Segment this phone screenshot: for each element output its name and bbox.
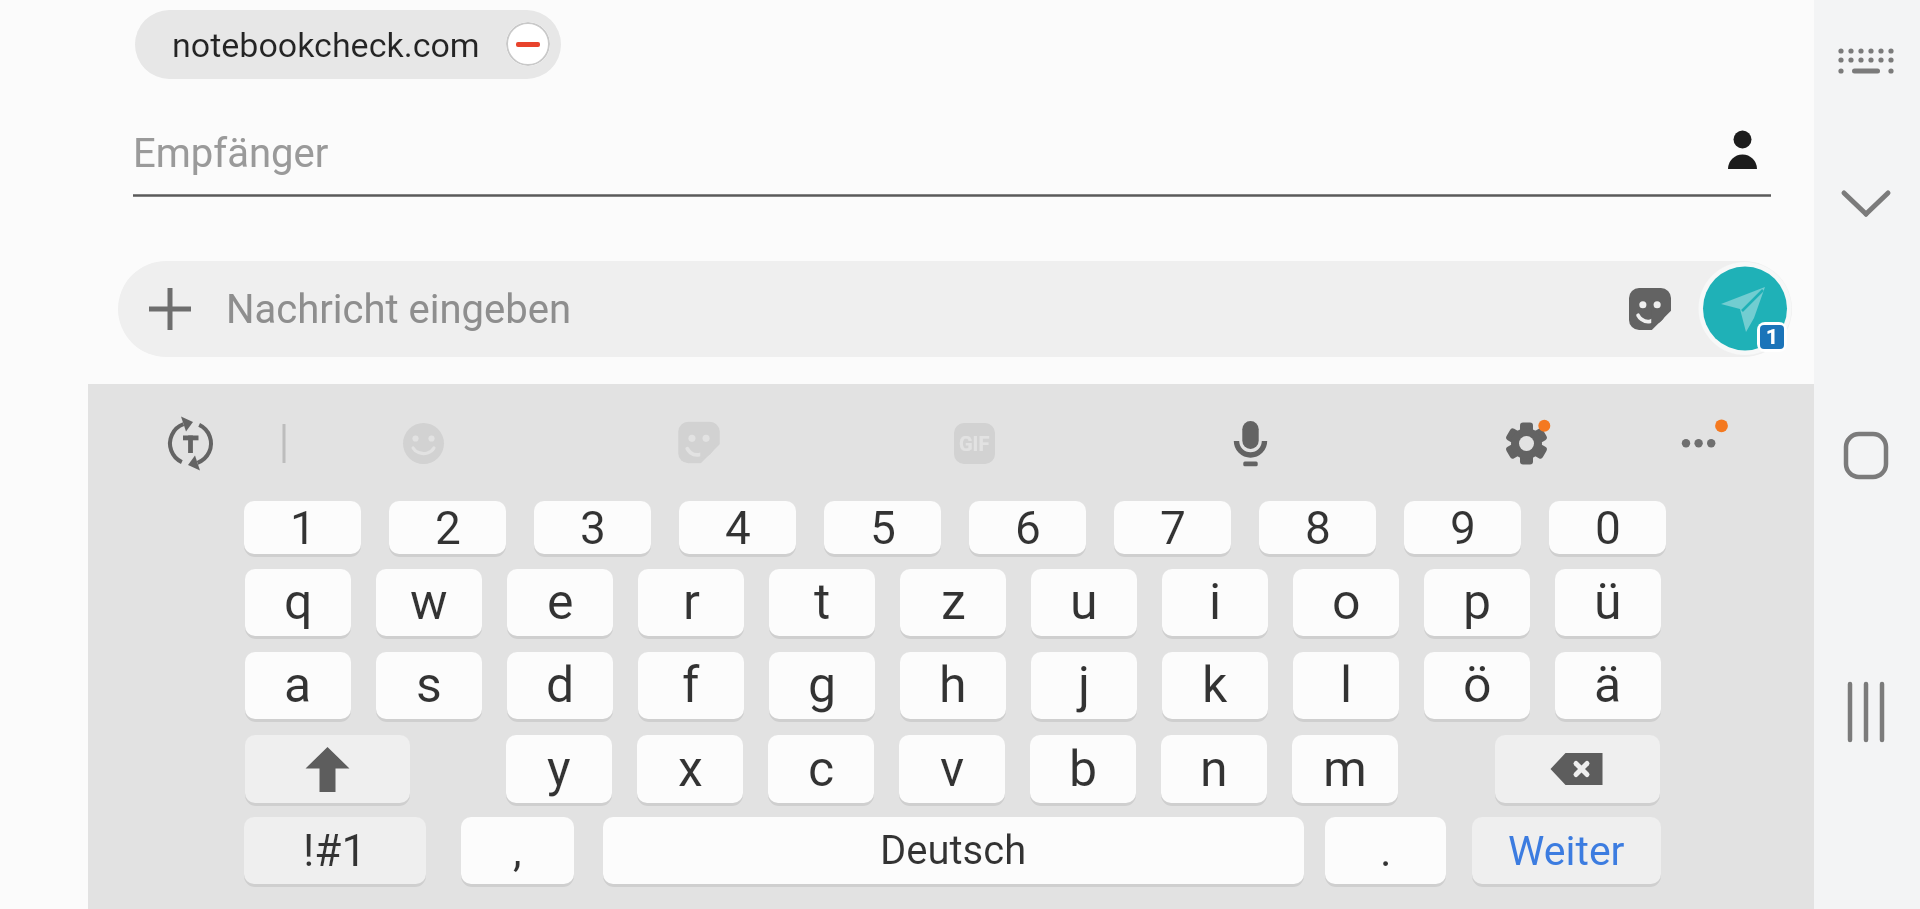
button[interactable]: s: [376, 652, 482, 719]
button[interactable]: v: [899, 735, 1005, 803]
button[interactable]: u: [1031, 569, 1137, 636]
staticText: Empfänger: [133, 130, 329, 177]
staticText: k: [1202, 656, 1228, 715]
button[interactable]: 5: [824, 501, 941, 554]
button[interactable]: ,: [461, 817, 574, 884]
button[interactable]: a: [245, 652, 351, 719]
button[interactable]: 0: [1549, 501, 1666, 554]
button[interactable]: Nachricht eingeben: [118, 261, 1792, 357]
staticText: g: [808, 656, 837, 715]
staticText: Deutsch: [880, 827, 1027, 874]
staticText: l: [1340, 656, 1353, 715]
button[interactable]: r: [638, 569, 744, 636]
button[interactable]: b: [1030, 735, 1136, 803]
button[interactable]: e: [507, 569, 613, 636]
staticText: m: [1323, 740, 1367, 799]
staticText: ö: [1463, 656, 1492, 715]
staticText: z: [941, 573, 966, 632]
button[interactable]: 1: [244, 501, 361, 554]
button[interactable]: Weiter: [1472, 817, 1661, 884]
staticText: 1: [1766, 325, 1779, 349]
staticText: 6: [1015, 501, 1041, 554]
button[interactable]: ü: [1555, 569, 1661, 636]
staticText: b: [1069, 740, 1098, 799]
button[interactable]: notebookcheck.com: [135, 10, 561, 79]
staticText: s: [416, 656, 442, 715]
button[interactable]: 9: [1404, 501, 1521, 554]
staticText: x: [678, 740, 703, 799]
staticText: t: [814, 573, 831, 632]
staticText: 3: [580, 501, 606, 554]
button[interactable]: o: [1293, 569, 1399, 636]
button[interactable]: n: [1161, 735, 1267, 803]
staticText: e: [547, 573, 574, 632]
staticText: ü: [1594, 573, 1622, 632]
button[interactable]: d: [507, 652, 613, 719]
staticText: .: [1380, 825, 1392, 877]
button[interactable]: c: [768, 735, 874, 803]
staticText: !#1: [303, 825, 367, 877]
button[interactable]: p: [1424, 569, 1530, 636]
button[interactable]: 6: [969, 501, 1086, 554]
button[interactable]: !#1: [244, 817, 426, 884]
staticText: GIF: [959, 432, 990, 455]
button[interactable]: [506, 22, 550, 66]
staticText: Weiter: [1508, 827, 1625, 875]
staticText: ä: [1594, 656, 1622, 715]
button[interactable]: 8: [1259, 501, 1376, 554]
staticText: y: [547, 740, 571, 799]
button[interactable]: t: [769, 569, 875, 636]
staticText: j: [1078, 656, 1090, 715]
staticText: p: [1463, 573, 1492, 632]
button[interactable]: w: [376, 569, 482, 636]
button[interactable]: ö: [1424, 652, 1530, 719]
button[interactable]: l: [1293, 652, 1399, 719]
button[interactable]: h: [900, 652, 1006, 719]
button[interactable]: y: [506, 735, 612, 803]
button[interactable]: .: [1325, 817, 1446, 884]
button[interactable]: Empfänger: [133, 120, 1776, 186]
staticText: r: [683, 573, 700, 632]
staticText: w: [410, 573, 448, 632]
staticText: Nachricht eingeben: [226, 286, 571, 333]
button[interactable]: i: [1162, 569, 1268, 636]
staticText: 9: [1450, 501, 1476, 554]
button[interactable]: q: [245, 569, 351, 636]
button[interactable]: k: [1162, 652, 1268, 719]
staticText: c: [808, 740, 835, 799]
staticText: a: [284, 656, 312, 715]
staticText: i: [1209, 573, 1222, 632]
staticText: 2: [435, 501, 461, 554]
button[interactable]: Deutsch: [603, 817, 1304, 884]
button[interactable]: 3: [534, 501, 651, 554]
button[interactable]: 2: [389, 501, 506, 554]
button[interactable]: [1814, 0, 1920, 909]
staticText: 0: [1595, 501, 1621, 554]
staticText: ,: [513, 825, 522, 877]
staticText: u: [1070, 573, 1098, 632]
staticText: n: [1200, 740, 1228, 799]
button[interactable]: j: [1031, 652, 1137, 719]
button[interactable]: x: [637, 735, 743, 803]
staticText: notebookcheck.com: [172, 25, 480, 65]
staticText: h: [939, 656, 967, 715]
staticText: 8: [1305, 501, 1331, 554]
staticText: 7: [1160, 501, 1186, 554]
button[interactable]: 4: [679, 501, 796, 554]
staticText: q: [284, 573, 313, 632]
button[interactable]: g: [769, 652, 875, 719]
button[interactable]: [1495, 735, 1660, 803]
staticText: d: [546, 656, 575, 715]
staticText: o: [1332, 573, 1361, 632]
button[interactable]: f: [638, 652, 744, 719]
staticText: v: [940, 740, 965, 799]
button[interactable]: [245, 735, 410, 803]
button[interactable]: m: [1292, 735, 1398, 803]
staticText: f: [682, 656, 700, 715]
button[interactable]: z: [900, 569, 1006, 636]
button[interactable]: ä: [1555, 652, 1661, 719]
staticText: 5: [870, 501, 896, 554]
staticText: 1: [290, 501, 316, 554]
button[interactable]: 7: [1114, 501, 1231, 554]
staticText: 4: [725, 501, 751, 554]
